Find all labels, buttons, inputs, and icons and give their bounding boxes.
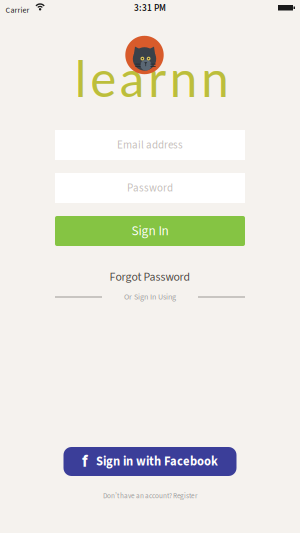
button[interactable]: Don’t have an account? Register: [103, 491, 197, 501]
staticText: 3:31 PM: [134, 1, 166, 15]
staticText: Password: [127, 180, 173, 196]
staticText: Or Sign In Using: [124, 291, 176, 303]
button[interactable]: Sign In: [55, 216, 245, 246]
staticText: Email address: [117, 137, 183, 153]
button[interactable]: Password: [55, 173, 245, 203]
staticText: Sign In: [131, 221, 168, 240]
staticText: Forgot Password: [109, 269, 190, 285]
staticText: learnn: [75, 48, 229, 108]
staticText: f: [82, 450, 88, 473]
staticText: Carrier: [5, 5, 29, 16]
button[interactable]: Forgot Password: [109, 269, 190, 285]
staticText: Don’t have an account? Register: [103, 491, 197, 501]
staticText: Sign in with Facebook: [96, 452, 218, 470]
button[interactable]: f: [63, 447, 236, 476]
button[interactable]: Email address: [55, 130, 245, 160]
